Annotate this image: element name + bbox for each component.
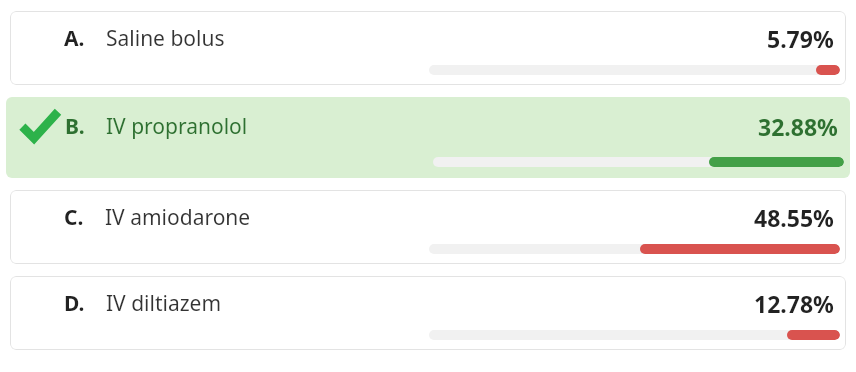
button[interactable]: D.	[10, 276, 846, 350]
staticText: C.	[64, 203, 84, 232]
staticText: IV diltiazem	[106, 289, 222, 318]
staticText: 12.78%	[754, 288, 834, 319]
staticText: 5.79%	[767, 23, 834, 54]
staticText: Saline bolus	[106, 24, 225, 53]
staticText: 48.55%	[754, 202, 834, 233]
other: Selected answer	[20, 109, 60, 143]
staticText: B.	[65, 112, 85, 141]
button[interactable]: Selected answer	[6, 97, 850, 178]
staticText: IV amiodarone	[105, 203, 251, 232]
staticText: 32.88%	[758, 111, 838, 142]
staticText: D.	[64, 289, 85, 318]
staticText: IV propranolol	[106, 112, 248, 141]
button[interactable]: A.	[10, 11, 846, 85]
button[interactable]: C.	[10, 190, 846, 264]
staticText: A.	[64, 24, 85, 53]
